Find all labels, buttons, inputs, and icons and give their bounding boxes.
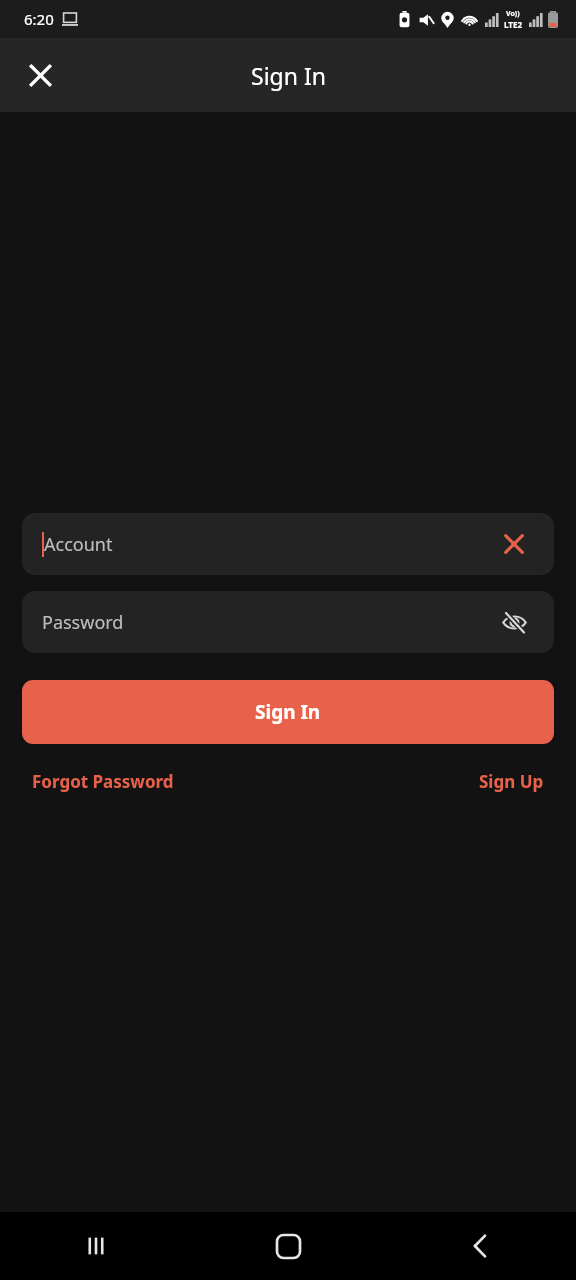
button[interactable]: Back bbox=[384, 1212, 576, 1280]
button[interactable]: Sign In bbox=[22, 680, 554, 744]
staticText: LTE2 bbox=[504, 19, 522, 30]
button[interactable]: Close bbox=[16, 51, 64, 99]
button[interactable]: Clear account bbox=[494, 524, 534, 564]
staticText: Sign In bbox=[251, 60, 326, 91]
staticText: Sign Up bbox=[479, 770, 544, 793]
button[interactable]: Home bbox=[192, 1212, 384, 1280]
button[interactable]: Show password bbox=[494, 602, 534, 642]
staticText: Vo)) bbox=[506, 9, 520, 19]
button[interactable]: Sign Up bbox=[469, 764, 554, 799]
button[interactable]: Password bbox=[22, 591, 554, 653]
staticText: Password bbox=[42, 610, 124, 635]
button[interactable]: Account bbox=[22, 513, 554, 575]
button[interactable]: Recent apps bbox=[0, 1212, 192, 1280]
staticText: Forgot Password bbox=[32, 770, 174, 793]
staticText: Account bbox=[44, 532, 113, 557]
staticText: 6:20 bbox=[24, 9, 54, 29]
staticText: Sign In bbox=[255, 699, 321, 725]
button[interactable]: Forgot Password bbox=[22, 764, 184, 799]
